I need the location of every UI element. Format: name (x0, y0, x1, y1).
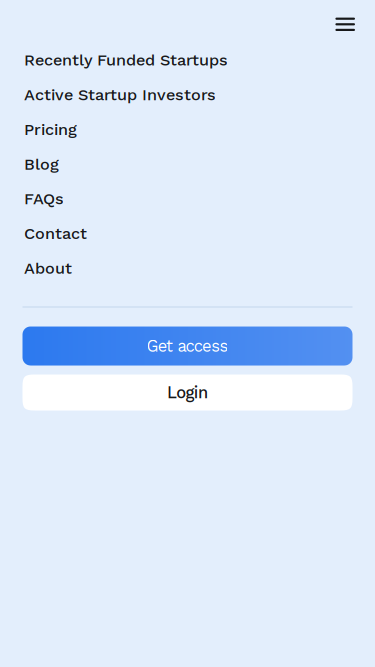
button[interactable]: Recently Funded Startups (24, 43, 351, 77)
button[interactable]: Active Startup Investors (24, 77, 351, 112)
staticText: Get access (147, 336, 228, 356)
button[interactable]: FAQs (24, 181, 351, 216)
staticText: Login (167, 383, 208, 402)
staticText: About (24, 259, 72, 278)
button[interactable]: Blog (24, 147, 351, 181)
staticText: FAQs (24, 189, 64, 208)
staticText: Active Startup Investors (24, 85, 216, 104)
staticText: Contact (24, 224, 87, 243)
staticText: Blog (24, 154, 59, 174)
staticText: Pricing (24, 120, 77, 139)
button[interactable]: Menu (324, 4, 366, 39)
button[interactable]: Contact (24, 216, 351, 251)
button[interactable]: About (24, 251, 351, 285)
button[interactable]: Login (22, 374, 352, 410)
button[interactable]: Pricing (24, 112, 351, 147)
staticText: Recently Funded Startups (24, 50, 228, 69)
button[interactable]: Get access (22, 326, 352, 365)
